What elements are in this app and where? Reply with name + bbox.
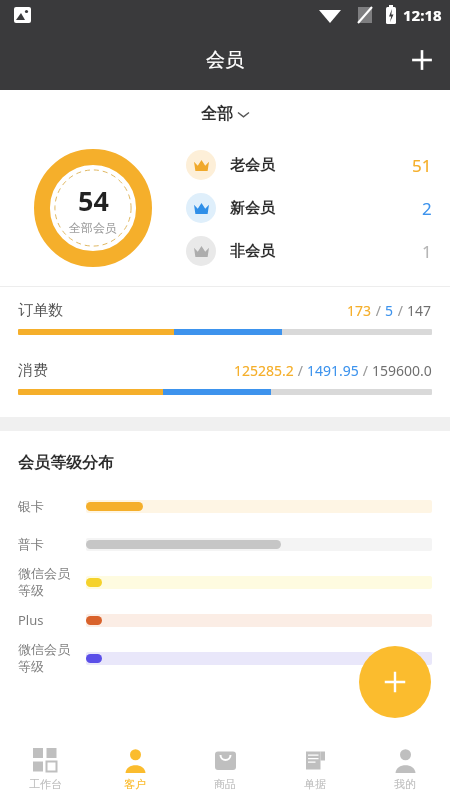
staticText: 微信会员 等级 (18, 641, 70, 675)
button[interactable]: 全部 (193, 100, 257, 128)
staticText: / (372, 301, 385, 320)
staticText: / (394, 301, 407, 320)
button[interactable]: 单据 (270, 738, 360, 800)
button[interactable]: Add member (359, 646, 431, 718)
button[interactable]: 微信会员 等级 (0, 639, 450, 677)
staticText: 客户 (124, 777, 146, 791)
staticText: 商品 (214, 777, 236, 791)
staticText: 51 (412, 154, 432, 177)
button[interactable]: 消费 (0, 347, 450, 407)
staticText: 订单数 (18, 301, 63, 320)
staticText: 全部会员 (69, 220, 117, 235)
staticText: 我的 (394, 777, 416, 791)
button[interactable]: 工作台 (0, 738, 90, 800)
staticText: 会员 (206, 48, 244, 72)
staticText: 消费 (18, 361, 48, 380)
button[interactable]: 银卡 (0, 487, 450, 525)
staticText: 银卡 (18, 498, 44, 514)
button[interactable]: Plus (0, 601, 450, 639)
button[interactable]: 我的 (360, 738, 450, 800)
staticText: 老会员 (230, 156, 275, 175)
button[interactable]: 客户 (90, 738, 180, 800)
staticText: / (359, 361, 372, 380)
staticText: 非会员 (230, 242, 275, 261)
button[interactable]: 非会员 (186, 236, 432, 266)
button[interactable]: 微信会员 等级 (0, 563, 450, 601)
staticText: 125285.2 (234, 361, 294, 380)
staticText: 159600.0 (372, 361, 432, 380)
button[interactable]: 老会员 (186, 150, 432, 180)
staticText: / (294, 361, 307, 380)
staticText: 工作台 (29, 777, 62, 791)
button[interactable]: 新会员 (186, 193, 432, 223)
staticText: 微信会员 等级 (18, 565, 70, 599)
staticText: 普卡 (18, 536, 44, 552)
button[interactable]: 商品 (180, 738, 270, 800)
staticText: 新会员 (230, 199, 275, 218)
staticText: 会员等级分布 (18, 453, 114, 473)
staticText: 173 (347, 301, 372, 320)
staticText: 2 (422, 197, 432, 220)
staticText: 147 (407, 301, 432, 320)
staticText: 1 (422, 240, 432, 263)
button[interactable]: 订单数 (0, 287, 450, 347)
button[interactable]: 普卡 (0, 525, 450, 563)
button[interactable]: Add (394, 32, 450, 88)
staticText: 5 (385, 301, 394, 320)
staticText: 54 (78, 182, 109, 219)
staticText: 全部 (201, 104, 233, 124)
staticText: Plus (18, 611, 44, 629)
staticText: 12:18 (403, 5, 442, 25)
staticText: 1491.95 (307, 361, 359, 380)
staticText: 单据 (304, 777, 326, 791)
